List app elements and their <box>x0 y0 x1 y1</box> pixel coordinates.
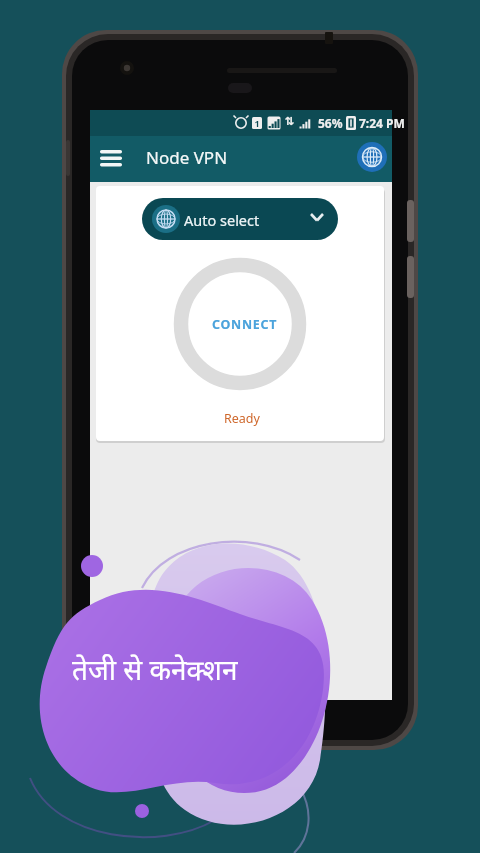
button[interactable]: Open navigation menu <box>97 141 131 171</box>
button[interactable] <box>142 198 338 240</box>
button[interactable]: Select server <box>354 138 392 176</box>
button[interactable] <box>174 258 306 390</box>
